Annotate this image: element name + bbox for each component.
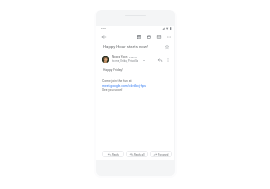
staticText: Happy Friday!	[103, 68, 123, 72]
button[interactable]: Reply	[102, 151, 124, 157]
button[interactable]: Delete	[145, 33, 153, 41]
button[interactable]: Archive	[135, 33, 143, 41]
button[interactable]: Mark as unread	[155, 33, 163, 41]
staticText: Forward	[158, 153, 169, 156]
staticText: 9:30	[101, 27, 106, 30]
button[interactable]: Reply all	[126, 151, 148, 157]
staticText: Noora Yoon	[112, 55, 128, 58]
button[interactable]: Happy Hour starts now!	[103, 44, 149, 49]
button[interactable]: More options	[164, 56, 171, 63]
button[interactable]: Forward	[150, 151, 172, 157]
staticText: See you soon!	[102, 88, 123, 92]
staticText: 4:05 PM	[129, 56, 137, 58]
staticText: Come join the fun at	[102, 79, 132, 83]
button[interactable]: Reply	[156, 56, 163, 63]
button[interactable]: Star	[163, 43, 171, 51]
button[interactable]: meet.google.com/cb-dbcj-hps	[102, 84, 147, 88]
staticText: Reply all	[134, 153, 145, 156]
staticText: to me, Erika, Priscilla	[112, 59, 139, 62]
button[interactable]: Back	[100, 33, 108, 41]
button[interactable]: Sender avatar	[102, 56, 109, 63]
staticText: Reply	[112, 153, 119, 156]
button[interactable]: More options	[165, 33, 173, 41]
